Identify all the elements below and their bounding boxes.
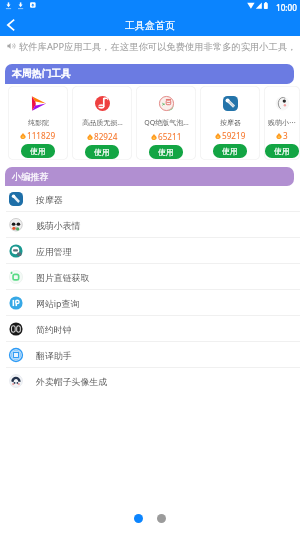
staticText: 使用 — [30, 146, 46, 156]
staticText: 贱萌小表情 — [267, 118, 297, 127]
staticText: 59219 — [222, 130, 246, 141]
staticText: 小编推荐 — [12, 171, 49, 183]
staticText: 高品质无损… — [82, 118, 123, 128]
staticText: 外卖帽子头像生成 — [36, 376, 108, 387]
staticText: 纯影院 — [28, 118, 49, 127]
button[interactable]: 使用 — [265, 144, 299, 158]
button[interactable]: 外卖帽子头像生成 — [0, 368, 300, 394]
staticText: 使用 — [222, 146, 238, 156]
staticText: 图片直链获取 — [36, 272, 90, 283]
button[interactable]: 使用 — [149, 145, 183, 159]
staticText: QQ绝版气泡… — [144, 118, 189, 128]
staticText: 使用 — [274, 146, 290, 156]
button[interactable]: 贱萌小表情 — [0, 212, 300, 238]
button[interactable]: 按摩器 — [0, 186, 300, 212]
staticText: 按摩器 — [36, 194, 63, 205]
staticText: 本周热门工具 — [12, 68, 71, 80]
staticText: 软件库APP应用工具，在这里你可以免费使用非常多的实用小工具， — [19, 40, 297, 53]
staticText: 简约时钟 — [36, 324, 72, 335]
staticText: 翻译助手 — [36, 350, 72, 361]
button[interactable]: 高品质无损… — [72, 86, 132, 160]
button[interactable]: 网站ip查询 — [0, 290, 300, 316]
button[interactable]: 使用 — [213, 144, 247, 158]
button[interactable]: 使用 — [21, 144, 55, 158]
staticText: 网站ip查询 — [36, 297, 80, 309]
button[interactable]: 翻译助手 — [0, 342, 300, 368]
button[interactable]: 使用 — [85, 145, 119, 159]
button[interactable]: 纯影院 — [8, 86, 68, 160]
staticText: 按摩器 — [220, 118, 241, 127]
button[interactable]: Back — [0, 14, 22, 36]
staticText: 贱萌小表情 — [36, 220, 81, 231]
button[interactable]: QQ绝版气泡… — [136, 86, 196, 160]
button[interactable]: 应用管理 — [0, 238, 300, 264]
staticText: 82924 — [94, 131, 118, 142]
staticText: 使用 — [158, 147, 174, 157]
staticText: 65211 — [158, 131, 182, 142]
staticText: 工具盒首页 — [125, 19, 175, 32]
button[interactable]: 贱萌小表情 — [264, 86, 300, 160]
button[interactable]: 图片直链获取 — [0, 264, 300, 290]
staticText: 3 — [283, 130, 288, 141]
staticText: 使用 — [94, 147, 110, 157]
staticText: 111829 — [27, 130, 56, 141]
button[interactable]: 简约时钟 — [0, 316, 300, 342]
staticText: 10:00 — [276, 2, 297, 13]
staticText: 应用管理 — [36, 246, 72, 257]
button[interactable]: 按摩器 — [200, 86, 260, 160]
